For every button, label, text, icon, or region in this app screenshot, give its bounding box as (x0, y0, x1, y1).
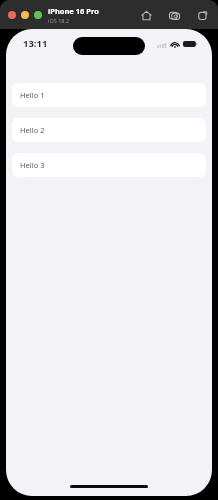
staticText: iOS 18.2 (48, 17, 70, 24)
button[interactable]: Hello 2 (12, 118, 206, 142)
button[interactable]: Hello 1 (12, 83, 206, 107)
button[interactable]: Close (8, 11, 16, 19)
button[interactable]: Minimize (21, 11, 29, 19)
button[interactable]: Zoom (34, 11, 42, 19)
button[interactable]: Record (194, 7, 210, 23)
staticText: iPhone 16 Pro (48, 6, 99, 16)
button[interactable]: Screenshot (166, 7, 182, 23)
button[interactable]: Hello 3 (12, 153, 206, 177)
staticText: Hello 1 (20, 90, 45, 100)
staticText: Hello 3 (20, 160, 45, 170)
staticText: Hello 2 (20, 125, 45, 135)
staticText: 13:11 (23, 37, 48, 50)
button[interactable]: Home (138, 7, 154, 23)
